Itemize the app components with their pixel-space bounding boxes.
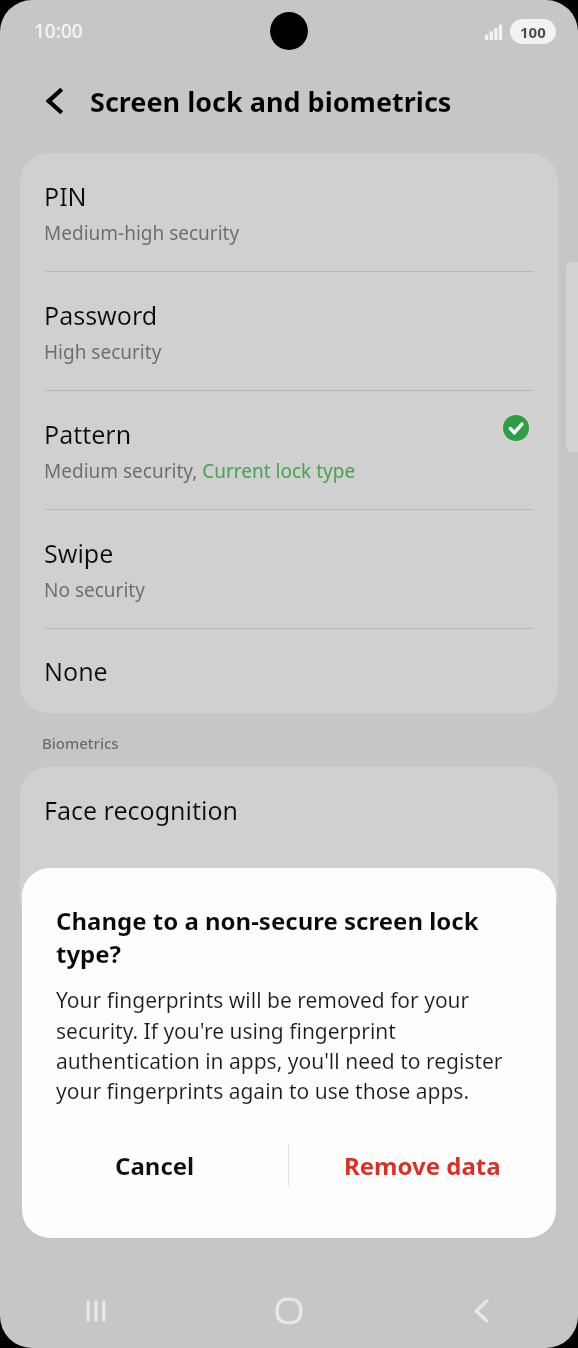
button[interactable]: Recent apps (58, 1274, 134, 1348)
button[interactable]: Password (20, 272, 558, 390)
staticText: Biometrics (42, 733, 119, 753)
staticText: Your fingerprints will be removed for yo… (56, 986, 522, 1105)
staticText: No security (44, 577, 145, 603)
button[interactable]: None (20, 629, 558, 713)
staticText: Password (44, 298, 158, 332)
staticText: Medium-high security (44, 220, 240, 246)
staticText: Remove data (344, 1149, 501, 1182)
staticText: High security (44, 339, 162, 365)
button[interactable]: Back (444, 1274, 520, 1348)
button[interactable]: Home (251, 1274, 327, 1348)
button[interactable]: Cancel (22, 1133, 288, 1197)
button[interactable]: Pattern (20, 391, 558, 509)
staticText: PIN (44, 179, 87, 213)
staticText: Face recognition (44, 793, 238, 827)
button[interactable]: Face recognition (20, 767, 558, 927)
button[interactable]: Swipe (20, 510, 558, 628)
staticText: Swipe (44, 536, 114, 570)
staticText: Pattern (44, 417, 132, 451)
staticText: Medium security, Current lock type (44, 458, 356, 484)
button[interactable]: Remove data (289, 1133, 556, 1197)
staticText: 10:00 (34, 18, 83, 44)
staticText: None (44, 654, 108, 688)
staticText: Change to a non-secure screen lock type? (56, 904, 522, 970)
staticText: Cancel (115, 1149, 195, 1182)
staticText: Screen lock and biometrics (90, 83, 452, 120)
button[interactable]: Back (26, 72, 84, 130)
button[interactable]: PIN (20, 153, 558, 271)
staticText: 100 (520, 22, 546, 42)
